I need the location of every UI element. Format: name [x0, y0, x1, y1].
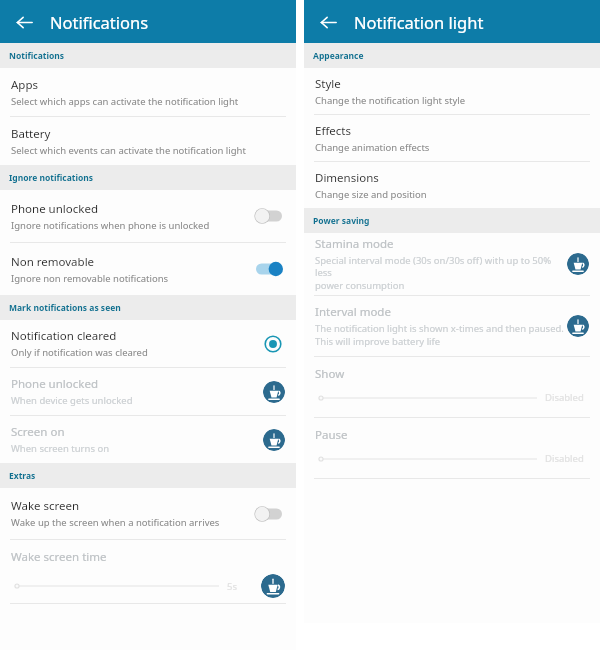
staticText: Extras	[9, 470, 36, 482]
staticText: Non removable	[11, 254, 95, 270]
staticText: Show	[315, 366, 345, 382]
staticText: Battery	[11, 126, 51, 142]
button[interactable]: Effects	[304, 115, 600, 161]
staticText: Notification light	[354, 11, 484, 33]
staticText: Ignore notifications	[9, 172, 94, 184]
button[interactable]: Back	[8, 6, 40, 38]
staticText: Notifications	[50, 11, 149, 33]
staticText: When device gets unlocked	[11, 394, 133, 407]
button[interactable]: Stamina mode	[304, 233, 600, 295]
staticText: 5s	[227, 580, 237, 593]
staticText: This will improve battery life	[315, 335, 441, 348]
button[interactable]: Unlock pro feature	[567, 315, 589, 337]
staticText: Notifications	[9, 50, 65, 62]
button[interactable]: Style	[304, 68, 600, 114]
button[interactable]: Wake screen time	[0, 540, 296, 603]
staticText: Wake screen time	[11, 549, 107, 565]
button[interactable]: Screen on	[0, 416, 296, 463]
staticText: Phone unlocked	[11, 376, 98, 392]
staticText: Select which apps can activate the notif…	[11, 95, 239, 108]
staticText: Pause	[315, 427, 348, 443]
button[interactable]: Unlock pro feature	[261, 574, 285, 598]
staticText: When screen turns on	[11, 442, 110, 455]
button[interactable]: Wake screen	[0, 488, 296, 539]
staticText: Style	[315, 76, 341, 92]
staticText: The notification light is shown x-times …	[315, 322, 564, 335]
staticText: Screen on	[11, 424, 65, 440]
button[interactable]: Battery	[0, 117, 296, 165]
staticText: Disabled	[545, 391, 584, 404]
staticText: Apps	[11, 77, 39, 93]
staticText: Interval mode	[315, 304, 391, 320]
button[interactable]: Phone unlocked	[0, 190, 296, 242]
button[interactable]: Notification cleared	[0, 320, 296, 367]
staticText: Wake screen	[11, 498, 80, 514]
staticText: Wake up the screen when a notification a…	[11, 516, 220, 529]
button[interactable]: Show	[304, 357, 600, 417]
staticText: Ignore non removable notifications	[11, 272, 169, 285]
button[interactable]: Back	[312, 6, 344, 38]
button[interactable]: Pause	[304, 418, 600, 478]
staticText: Phone unlocked	[11, 201, 98, 217]
button[interactable]: Unlock pro feature	[263, 429, 285, 451]
staticText: Mark notifications as seen	[9, 302, 121, 314]
staticText: Notification cleared	[11, 328, 117, 344]
button[interactable]: Unlock pro feature	[567, 253, 589, 275]
staticText: Select which events can activate the not…	[11, 144, 246, 157]
staticText: Disabled	[545, 452, 584, 465]
staticText: Dimensions	[315, 170, 379, 186]
staticText: Change the notification light style	[315, 94, 466, 107]
button[interactable]: Apps	[0, 68, 296, 116]
staticText: Change animation effects	[315, 141, 430, 154]
staticText: power consumption	[315, 279, 405, 292]
button[interactable]: Unlock pro feature	[263, 381, 285, 403]
staticText: Change size and position	[315, 188, 427, 201]
button[interactable]: Non removable	[0, 243, 296, 295]
staticText: Stamina mode	[315, 236, 394, 252]
button[interactable]: Interval mode	[304, 296, 600, 356]
staticText: Power saving	[313, 215, 370, 227]
button[interactable]: Phone unlocked	[0, 368, 296, 415]
staticText: Only if notification was cleared	[11, 346, 148, 359]
staticText: Effects	[315, 123, 351, 139]
button[interactable]: Dimensions	[304, 162, 600, 208]
staticText: Ignore notifications when phone is unloc…	[11, 219, 210, 232]
staticText: Special interval mode (30s on/30s off) w…	[315, 254, 567, 279]
staticText: Appearance	[313, 50, 364, 62]
